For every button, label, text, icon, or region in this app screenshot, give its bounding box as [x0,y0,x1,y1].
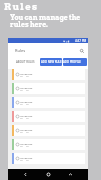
button[interactable]: ADVERTISE [12,139,85,150]
staticText: ADVERTISE [20,86,33,89]
button[interactable]: ADVERTISE [12,83,85,94]
staticText: ADD NEW RULE [41,60,62,64]
staticText: ADVERTISE [20,114,33,117]
button[interactable]: ADVERTISE [12,125,85,136]
staticText: Rules [15,48,26,53]
button[interactable]: ADVERTISE [12,153,85,164]
button[interactable]: Home [44,170,53,179]
staticText: All All [20,117,29,120]
staticText: ADD PROFILE RULE [63,60,87,64]
button[interactable]: ADVERTISE [12,97,85,108]
staticText: ADVERTISE [20,156,33,159]
staticText: ADVERTISE [20,100,33,103]
button[interactable]: ADD NEW RULE [40,58,62,66]
staticText: ABOUT RULES [16,60,35,64]
staticText: You can manage the rules here. [10,13,81,29]
staticText: All All [20,159,29,162]
staticText: All All [20,131,29,134]
button[interactable]: Back [21,170,30,179]
staticText: Rules [4,1,39,12]
button[interactable]: ADVERTISE [12,111,85,122]
button[interactable]: Recent apps [66,170,75,179]
staticText: ADVERTISE [20,128,33,131]
staticText: All All [20,89,29,92]
staticText: All All [20,103,29,106]
staticText: ADVERTISE [20,142,33,145]
button[interactable]: ADD PROFILE RULE [63,58,87,66]
button[interactable]: ADVERTISE [12,69,85,80]
staticText: All All [20,75,29,78]
staticText: ADVERTISE [20,72,33,75]
button[interactable]: Search [78,47,86,55]
staticText: 4:37 PM [75,39,87,43]
staticText: All All [20,145,29,148]
button[interactable]: ABOUT RULES [11,58,39,66]
